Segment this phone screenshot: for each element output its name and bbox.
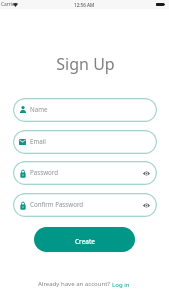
staticText: 12:56 AM bbox=[74, 2, 95, 8]
staticText: Email bbox=[30, 137, 46, 145]
button[interactable]: Create bbox=[34, 227, 135, 252]
staticText: Password bbox=[30, 168, 58, 176]
staticText: Already have an account? bbox=[38, 280, 112, 288]
staticText: Sign Up bbox=[1, 53, 169, 75]
button[interactable]: Show password bbox=[142, 170, 150, 176]
staticText: Create bbox=[75, 237, 95, 246]
button[interactable]: Show password bbox=[142, 202, 150, 208]
staticText: Confirm Password bbox=[30, 200, 84, 208]
button[interactable]: Confirm Password bbox=[13, 193, 157, 217]
button[interactable]: Name bbox=[13, 98, 157, 122]
staticText: Name bbox=[30, 105, 48, 113]
staticText: Log in bbox=[112, 280, 130, 288]
staticText: Carrier bbox=[1, 1, 17, 8]
button[interactable]: Password bbox=[13, 161, 157, 185]
button[interactable]: Log in bbox=[112, 280, 130, 288]
button[interactable]: Email bbox=[13, 130, 157, 154]
